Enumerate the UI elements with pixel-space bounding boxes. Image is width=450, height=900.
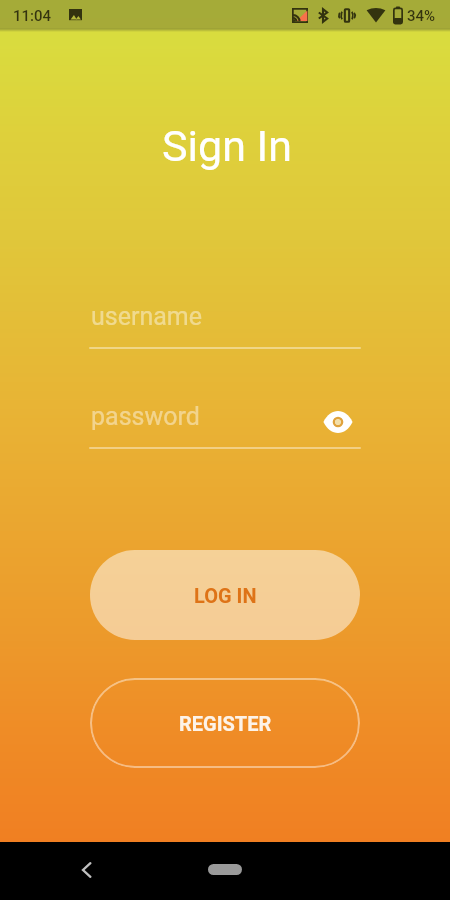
staticText: 11:04	[13, 7, 52, 25]
staticText: password	[91, 402, 200, 431]
button[interactable]: Show password	[322, 406, 354, 438]
staticText: LOG IN	[194, 584, 257, 607]
staticText: 34%	[407, 7, 436, 25]
button[interactable]: LOG IN	[90, 550, 360, 640]
button[interactable]: password	[89, 400, 361, 449]
staticText: Sign In	[2, 121, 450, 171]
button[interactable]: username	[89, 300, 361, 349]
button[interactable]: REGISTER	[90, 678, 360, 768]
staticText: username	[91, 302, 202, 331]
button[interactable]: Back	[66, 850, 106, 890]
button[interactable]: Home	[208, 864, 242, 875]
staticText: REGISTER	[179, 712, 272, 735]
